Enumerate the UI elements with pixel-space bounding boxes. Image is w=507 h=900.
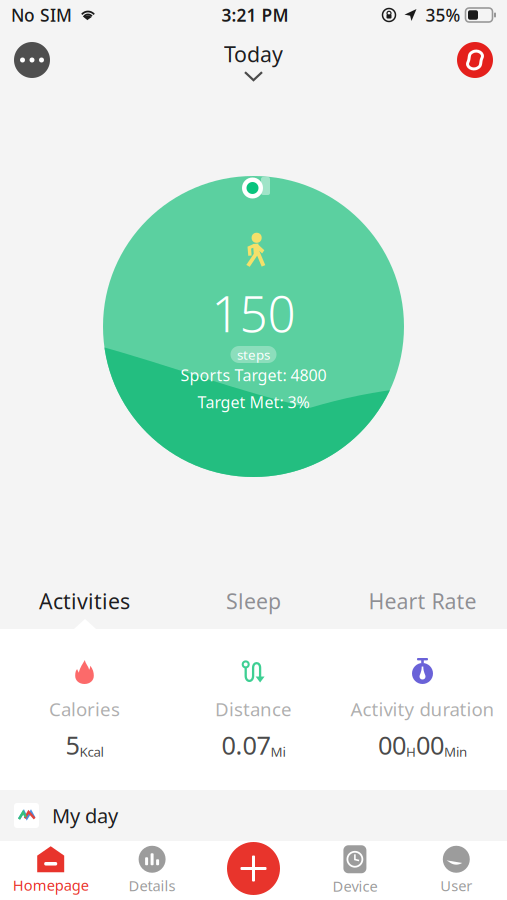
staticText: Activity duration: [350, 697, 494, 721]
staticText: 5: [65, 728, 79, 762]
staticText: 3:21 PM: [221, 3, 288, 26]
staticText: Distance: [215, 697, 292, 721]
staticText: 150: [211, 280, 295, 346]
staticText: No SIM: [11, 3, 72, 26]
button[interactable]: My day: [0, 790, 507, 841]
button[interactable]: Add: [203, 842, 304, 899]
staticText: Kcal: [79, 743, 103, 760]
staticText: Mi: [270, 743, 285, 760]
button[interactable]: Homepage: [0, 846, 101, 895]
staticText: Target Met: 3%: [197, 391, 309, 413]
button[interactable]: Today: [224, 40, 283, 80]
staticText: 00: [378, 728, 406, 762]
staticText: User: [440, 876, 472, 895]
staticText: Today: [224, 40, 283, 68]
button[interactable]: Attach device: [451, 36, 499, 84]
staticText: steps: [237, 346, 270, 363]
staticText: Sleep: [226, 587, 281, 615]
staticText: Device: [332, 876, 377, 896]
staticText: 00: [416, 728, 444, 762]
button[interactable]: Sleep: [169, 587, 338, 615]
staticText: Activities: [39, 587, 130, 615]
staticText: 0.07: [221, 728, 270, 762]
staticText: Heart Rate: [368, 587, 476, 615]
button[interactable]: Device: [304, 845, 406, 896]
button[interactable]: More options: [8, 36, 56, 84]
staticText: 35%: [425, 3, 460, 26]
button[interactable]: Heart Rate: [338, 587, 507, 615]
staticText: H: [406, 743, 416, 760]
button[interactable]: User: [406, 846, 507, 895]
staticText: Calories: [49, 697, 120, 721]
staticText: Sports Target: 4800: [180, 364, 326, 386]
button[interactable]: Details: [101, 846, 203, 895]
button[interactable]: Activities: [0, 587, 169, 615]
staticText: My day: [52, 802, 118, 829]
staticText: Min: [444, 743, 467, 760]
staticText: Homepage: [13, 875, 89, 895]
staticText: Details: [129, 876, 176, 895]
